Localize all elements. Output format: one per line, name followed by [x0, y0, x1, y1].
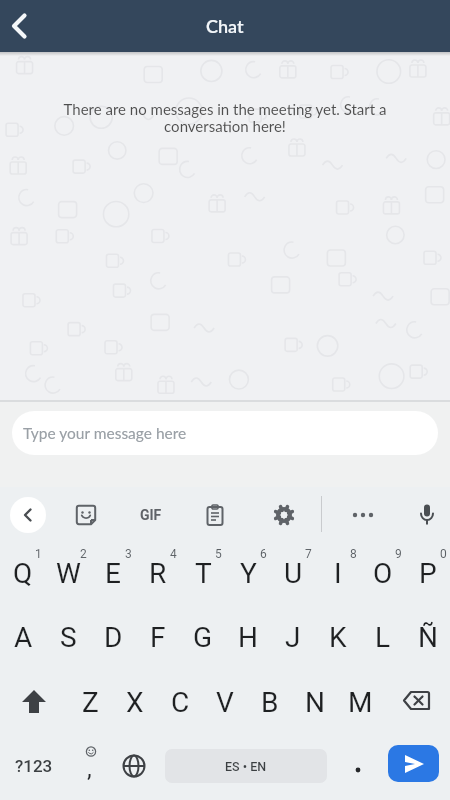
- button[interactable]: P: [406, 541, 450, 605]
- staticText: ,: [87, 755, 92, 783]
- staticText: D: [104, 621, 123, 654]
- staticText: T: [195, 557, 212, 590]
- staticText: G: [193, 621, 213, 654]
- button[interactable]: [66, 495, 106, 535]
- button[interactable]: [2, 670, 66, 734]
- staticText: 6: [260, 547, 267, 561]
- staticText: K: [329, 621, 347, 654]
- button[interactable]: ES • EN: [165, 749, 327, 783]
- staticText: R: [149, 557, 167, 590]
- button[interactable]: X: [113, 670, 157, 734]
- staticText: H: [238, 621, 258, 654]
- button[interactable]: [195, 495, 235, 535]
- button[interactable]: G: [181, 605, 225, 669]
- button[interactable]: [112, 734, 156, 798]
- button[interactable]: [335, 734, 381, 798]
- staticText: U: [284, 557, 303, 590]
- staticText: 9: [395, 547, 402, 561]
- button[interactable]: O: [361, 541, 405, 605]
- button[interactable]: [0, 0, 52, 52]
- staticText: E: [105, 557, 121, 590]
- button[interactable]: Ñ: [406, 605, 450, 669]
- staticText: F: [150, 621, 166, 654]
- staticText: C: [171, 686, 190, 719]
- button[interactable]: L: [361, 605, 405, 669]
- staticText: I: [334, 557, 342, 590]
- staticText: 3: [125, 547, 132, 561]
- button[interactable]: J: [271, 605, 315, 669]
- staticText: 1: [35, 547, 42, 561]
- staticText: B: [261, 686, 279, 719]
- staticText: 2: [80, 547, 87, 561]
- staticText: N: [305, 686, 325, 719]
- button[interactable]: F: [136, 605, 180, 669]
- staticText: Chat: [206, 15, 244, 37]
- button[interactable]: R: [136, 541, 180, 605]
- staticText: 7: [305, 547, 312, 561]
- button[interactable]: [264, 495, 304, 535]
- staticText: M: [348, 686, 373, 719]
- staticText: X: [126, 686, 144, 719]
- button[interactable]: GIF: [128, 495, 174, 535]
- button[interactable]: W: [46, 541, 90, 605]
- staticText: J: [285, 621, 301, 654]
- staticText: Ñ: [418, 621, 438, 654]
- button[interactable]: ,: [68, 734, 112, 798]
- staticText: L: [375, 621, 391, 654]
- staticText: ?123: [15, 756, 53, 776]
- button[interactable]: [343, 495, 383, 535]
- button[interactable]: K: [316, 605, 360, 669]
- button[interactable]: [388, 745, 439, 782]
- button[interactable]: [384, 670, 448, 734]
- button[interactable]: M: [338, 670, 382, 734]
- button[interactable]: C: [158, 670, 202, 734]
- staticText: 0: [440, 547, 447, 561]
- button[interactable]: A: [1, 605, 45, 669]
- button[interactable]: Y: [226, 541, 270, 605]
- staticText: Y: [240, 557, 257, 590]
- button[interactable]: S: [46, 605, 90, 669]
- staticText: Type your message here: [23, 424, 187, 443]
- button[interactable]: H: [226, 605, 270, 669]
- staticText: 4: [170, 547, 177, 561]
- button[interactable]: U: [271, 541, 315, 605]
- button[interactable]: I: [316, 541, 360, 605]
- button[interactable]: N: [293, 670, 337, 734]
- staticText: 5: [215, 547, 222, 561]
- button[interactable]: B: [248, 670, 292, 734]
- button[interactable]: V: [203, 670, 247, 734]
- staticText: V: [216, 686, 234, 719]
- button[interactable]: [10, 497, 46, 533]
- staticText: W: [56, 557, 81, 590]
- staticText: Z: [82, 686, 99, 719]
- button[interactable]: D: [91, 605, 135, 669]
- staticText: There are no messages in the meeting yet…: [0, 100, 450, 136]
- staticText: O: [373, 557, 393, 590]
- button[interactable]: [407, 495, 447, 535]
- staticText: P: [419, 557, 437, 590]
- staticText: GIF: [140, 507, 162, 523]
- button[interactable]: Type your message here: [12, 411, 438, 455]
- staticText: Q: [13, 557, 33, 590]
- button[interactable]: Q: [1, 541, 45, 605]
- staticText: S: [60, 621, 77, 654]
- button[interactable]: T: [181, 541, 225, 605]
- button[interactable]: ?123: [6, 734, 62, 798]
- staticText: 8: [350, 547, 357, 561]
- staticText: A: [14, 621, 33, 654]
- button[interactable]: E: [91, 541, 135, 605]
- staticText: ES • EN: [225, 759, 267, 774]
- button[interactable]: Z: [68, 670, 112, 734]
